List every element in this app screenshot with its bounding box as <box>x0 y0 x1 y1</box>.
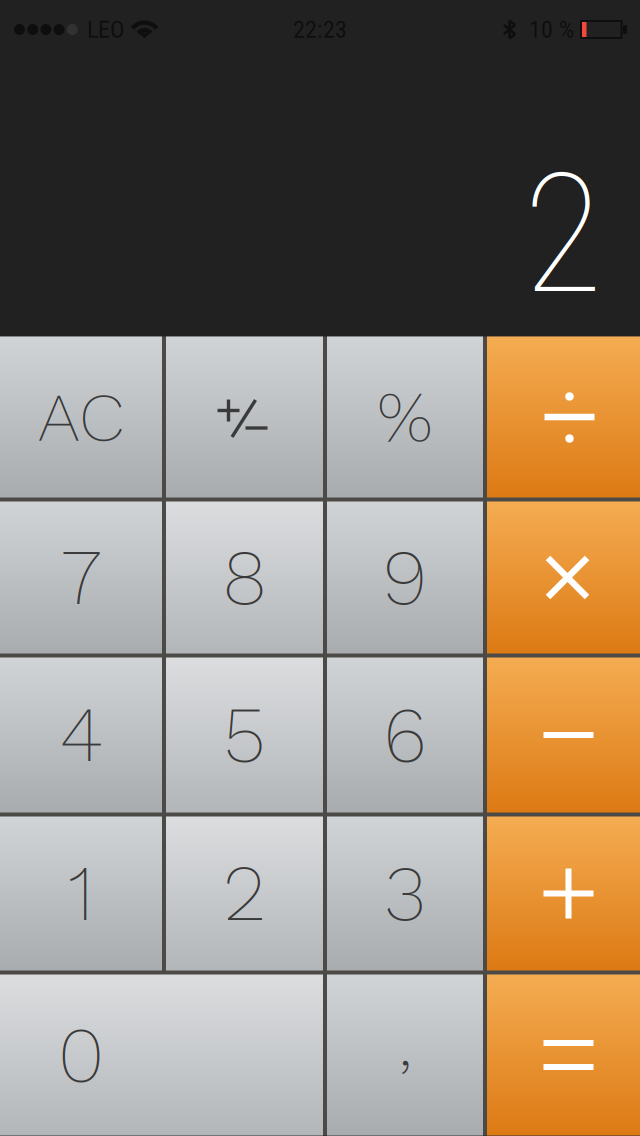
staticText: 5 <box>223 690 265 780</box>
button[interactable]: Multiply <box>487 501 640 653</box>
button[interactable]: 9 <box>327 501 483 653</box>
staticText: 8 <box>222 532 266 623</box>
button[interactable]: Divide <box>487 336 640 497</box>
staticText: LEO <box>87 15 124 43</box>
staticText: 2 <box>523 138 603 331</box>
button[interactable]: 7 <box>0 501 162 653</box>
button[interactable]: 6 <box>327 657 483 812</box>
staticText: % <box>377 375 433 459</box>
button[interactable]: AC <box>0 336 162 497</box>
button[interactable]: Plus minus <box>166 336 323 497</box>
button[interactable]: 5 <box>166 657 323 812</box>
button[interactable]: 2 <box>166 816 323 970</box>
staticText: 0 <box>58 1010 104 1100</box>
button[interactable]: % <box>327 336 483 497</box>
button[interactable]: 0 <box>0 974 323 1135</box>
staticText: 3 <box>384 848 425 939</box>
staticText: 7 <box>61 532 100 623</box>
button[interactable]: 4 <box>0 657 162 812</box>
staticText: , <box>398 994 412 1084</box>
button[interactable]: 8 <box>166 501 323 653</box>
button[interactable]: Equals <box>487 974 640 1135</box>
staticText: 4 <box>59 690 102 780</box>
staticText: 10 % <box>529 15 574 43</box>
staticText: 9 <box>382 532 427 623</box>
button[interactable]: 1 <box>0 816 162 970</box>
button[interactable]: , <box>327 974 483 1135</box>
staticText: 2 <box>223 848 265 939</box>
button[interactable]: 3 <box>327 816 483 970</box>
staticText: 6 <box>383 690 426 780</box>
staticText: 1 <box>68 848 94 939</box>
button[interactable]: Plus <box>487 816 640 970</box>
staticText: AC <box>38 376 124 458</box>
staticText: 22:23 <box>293 15 347 43</box>
button[interactable]: Minus <box>487 657 640 812</box>
